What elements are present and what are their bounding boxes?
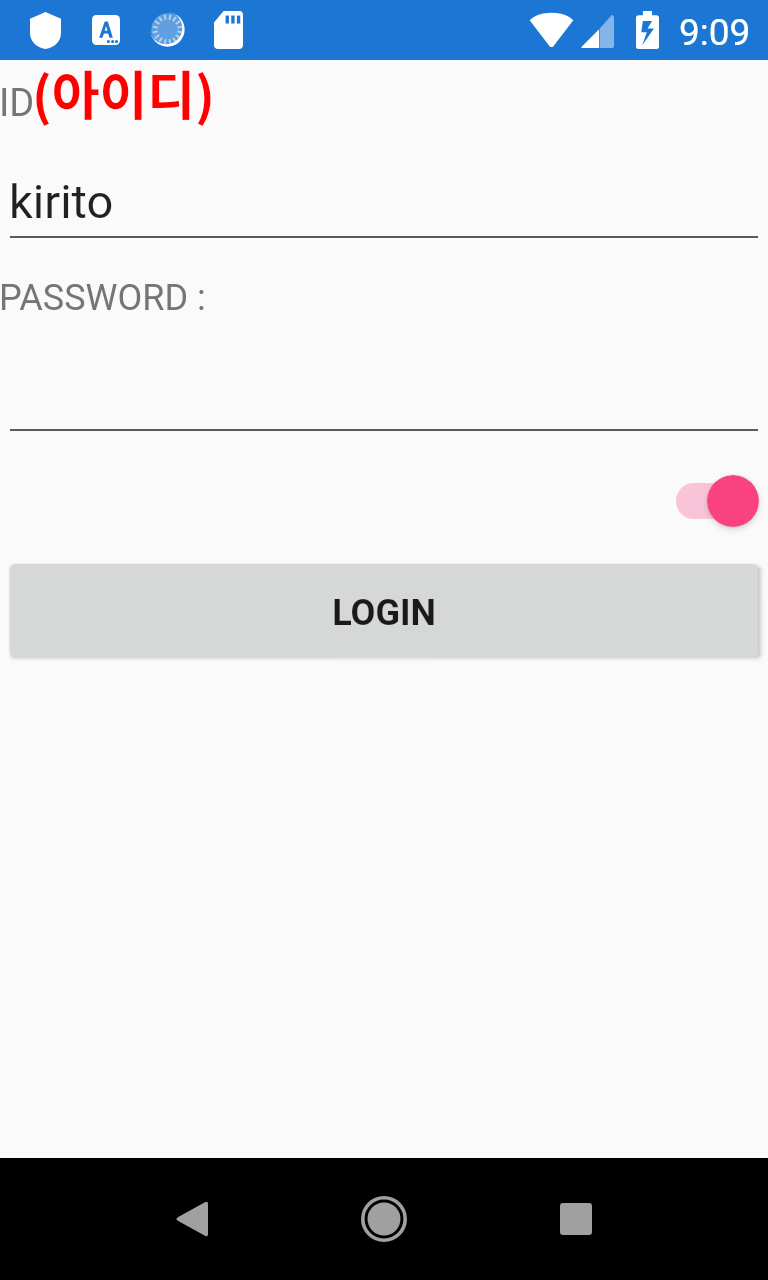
- staticText: (아이디): [32, 55, 215, 130]
- staticText: 9:09: [679, 11, 751, 54]
- button[interactable]: Password: [10, 354, 758, 431]
- staticText: PASSWORD :: [0, 277, 206, 319]
- button[interactable]: Back: [144, 1158, 240, 1280]
- staticText: LOGIN: [332, 592, 436, 634]
- button[interactable]: LOGIN: [10, 564, 758, 657]
- staticText: kirito: [9, 174, 114, 229]
- button[interactable]: Home: [336, 1158, 432, 1280]
- button[interactable]: Recent apps: [528, 1158, 624, 1280]
- staticText: ID: [0, 81, 35, 126]
- button[interactable]: Show password: [660, 459, 768, 541]
- button[interactable]: kirito: [10, 161, 758, 238]
